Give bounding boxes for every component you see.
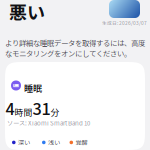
staticText: 睡眠 (24, 81, 42, 94)
staticText: 生成日: 2026/03/07 (102, 19, 147, 26)
staticText: より詳細な睡眠データを取得するには、高度なモニタリングをオンにしてください。 (5, 37, 145, 59)
staticText: 4時間31分 (5, 96, 59, 119)
staticText: 浅い (48, 138, 60, 147)
staticText: 深い (18, 138, 30, 147)
staticText: ソース: Xiaomi Smart Band 10 (7, 118, 90, 127)
staticText: 覚醒 (76, 138, 88, 147)
staticText: 悪い (9, 0, 45, 25)
